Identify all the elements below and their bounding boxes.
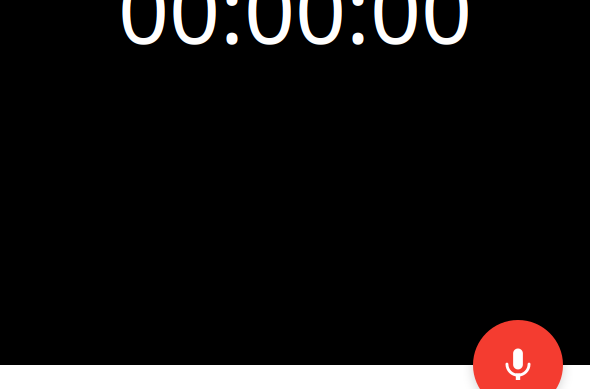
button[interactable]: Record <box>473 320 563 389</box>
staticText: 00:00:00 <box>118 0 472 68</box>
